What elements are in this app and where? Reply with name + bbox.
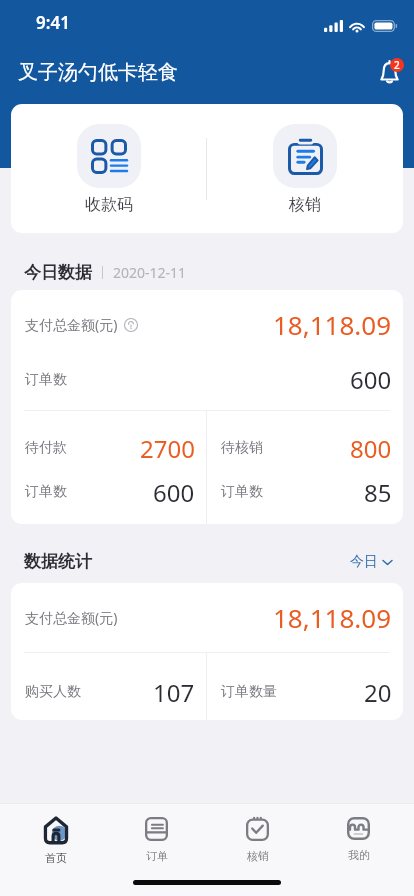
button[interactable]: 我的	[308, 804, 409, 864]
button[interactable]: 今日	[350, 553, 392, 571]
button[interactable]: 核销	[207, 804, 308, 864]
button[interactable]: 首页	[5, 804, 106, 864]
staticText: 支付总金额(元)	[25, 608, 118, 627]
button[interactable]: 订单	[106, 804, 207, 864]
staticText: 今日	[350, 553, 378, 571]
staticText: 2	[394, 58, 400, 72]
staticText: 订单数	[221, 483, 263, 501]
staticText: 600	[153, 476, 195, 509]
button[interactable]: 核销	[207, 104, 403, 233]
staticText: 2020-12-11	[113, 263, 187, 282]
staticText: 订单数量	[221, 683, 277, 701]
staticText: 107	[153, 676, 195, 709]
staticText: 800	[350, 432, 392, 465]
staticText: 核销	[247, 849, 269, 863]
staticText: 85	[364, 476, 392, 509]
staticText: 2700	[140, 432, 195, 465]
staticText: 9:41	[36, 11, 70, 34]
staticText: 今日数据	[24, 262, 92, 283]
staticText: 待付款	[25, 439, 67, 457]
staticText: 首页	[45, 851, 67, 864]
staticText: 订单数	[25, 371, 67, 389]
staticText: 订单	[146, 849, 168, 863]
staticText: 数据统计	[24, 551, 92, 572]
staticText: 18,118.09	[273, 307, 392, 342]
staticText: 我的	[348, 848, 370, 862]
button[interactable]: 收款码	[11, 104, 206, 233]
staticText: 订单数	[25, 483, 67, 501]
staticText: 核销	[289, 195, 321, 215]
staticText: 20	[364, 676, 392, 709]
staticText: 支付总金额(元)	[25, 315, 118, 334]
button[interactable]: Notifications	[370, 54, 406, 90]
staticText: 待核销	[221, 439, 263, 457]
staticText: 18,118.09	[273, 600, 392, 635]
staticText: 收款码	[85, 195, 133, 215]
staticText: 叉子汤勺低卡轻食	[18, 60, 178, 85]
staticText: 购买人数	[25, 683, 81, 701]
staticText: 600	[350, 363, 392, 396]
